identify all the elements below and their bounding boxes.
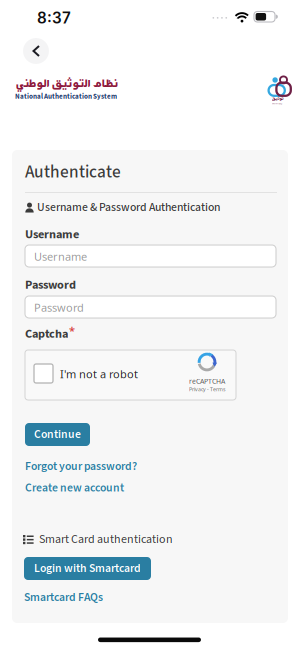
button[interactable]: Login with Smartcard (24, 557, 151, 580)
staticText: Smart Card authentication (39, 531, 173, 547)
staticText: reCAPTCHA (189, 376, 225, 386)
staticText: Forgot your password? (25, 459, 137, 474)
staticText: Create new account (25, 480, 124, 496)
staticText: توثيق (271, 96, 283, 101)
button[interactable]: Smartcard FAQs (24, 590, 103, 605)
button[interactable]: Password (25, 296, 276, 318)
staticText: Password (25, 277, 76, 293)
staticText: نظام التوثيق الوطني (15, 75, 118, 91)
staticText: TAWTHEEQ (271, 102, 282, 105)
staticText: Smartcard FAQs (24, 590, 103, 605)
button[interactable]: Forgot your password? (25, 459, 137, 474)
staticText: I'm not a robot (60, 366, 138, 381)
staticText: Username & Password Authentication (37, 200, 220, 215)
staticText: * (69, 323, 75, 338)
button[interactable]: Create new account (25, 480, 124, 496)
staticText: Password (34, 300, 84, 315)
staticText: Login with Smartcard (34, 561, 141, 576)
staticText: Privacy - Terms (189, 386, 225, 393)
staticText: Username (34, 249, 87, 264)
staticText: National Authentication System (15, 92, 117, 101)
staticText: Authenticate (25, 161, 121, 183)
staticText: Captcha (25, 326, 68, 342)
button[interactable]: I'm not a robot (34, 364, 53, 383)
button[interactable]: Username (25, 245, 276, 267)
button[interactable]: Continue (25, 423, 90, 446)
button[interactable]: Back (23, 38, 49, 64)
staticText: Continue (34, 427, 81, 442)
staticText: 8:37 (37, 9, 71, 27)
staticText: Username (25, 226, 79, 242)
